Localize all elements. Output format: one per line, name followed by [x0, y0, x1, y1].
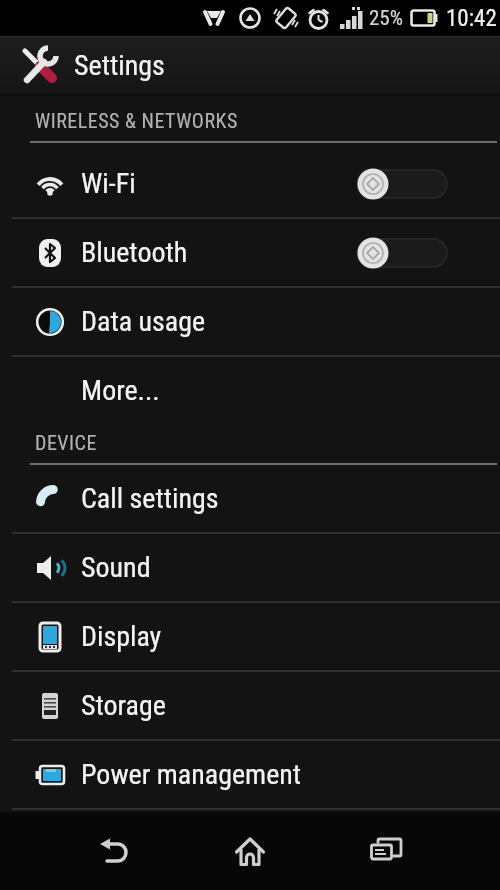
button[interactable]: Power management: [0, 741, 500, 808]
staticText: 25%: [369, 6, 404, 31]
staticText: Sound: [81, 551, 151, 584]
button[interactable]: Settings: [0, 37, 500, 94]
staticText: More...: [81, 374, 160, 407]
staticText: Data usage: [81, 305, 206, 338]
button[interactable]: Sound: [0, 534, 500, 601]
staticText: Bluetooth: [81, 236, 188, 269]
staticText: WIRELESS & NETWORKS: [35, 109, 238, 132]
staticText: 10:42: [446, 5, 497, 32]
staticText: Wi-Fi: [81, 167, 136, 200]
button[interactable]: [364, 812, 408, 890]
button[interactable]: Storage: [0, 672, 500, 739]
button[interactable]: Data usage: [0, 288, 500, 355]
staticText: Power management: [81, 758, 302, 791]
staticText: Storage: [81, 689, 166, 722]
button[interactable]: Call settings: [0, 465, 500, 532]
staticText: Display: [81, 620, 162, 653]
button[interactable]: [228, 812, 272, 890]
button[interactable]: More...: [0, 357, 500, 424]
button[interactable]: Display: [0, 603, 500, 670]
button[interactable]: Bluetooth: [0, 219, 500, 286]
staticText: Settings: [74, 49, 165, 82]
staticText: DEVICE: [35, 431, 97, 454]
button[interactable]: Wi-Fi: [0, 150, 500, 217]
staticText: Call settings: [81, 482, 219, 515]
button[interactable]: [92, 812, 136, 890]
